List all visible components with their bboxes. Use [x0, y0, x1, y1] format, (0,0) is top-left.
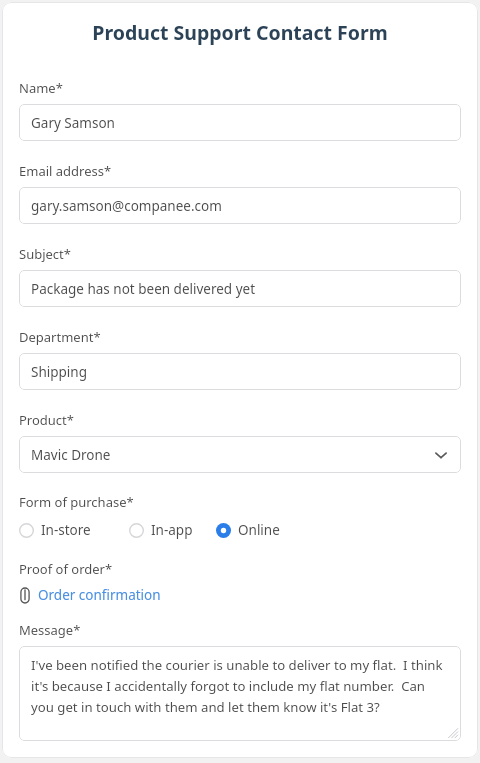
staticText: Online	[238, 521, 280, 539]
staticText: Form of purchase*	[19, 493, 134, 511]
staticText: In-store	[41, 521, 91, 539]
staticText: Gary Samson	[31, 114, 115, 132]
button[interactable]: I've been notified the courier is unable…	[19, 646, 461, 741]
staticText: Subject*	[19, 245, 71, 263]
staticText: Package has not been delivered yet	[31, 280, 256, 298]
staticText: Product Support Contact Form	[2, 19, 478, 46]
staticText: Order confirmation	[38, 586, 161, 604]
button[interactable]: Mavic Drone	[19, 436, 461, 473]
button[interactable]: In-app	[129, 519, 193, 541]
button[interactable]: gary.samson@companee.com	[19, 187, 461, 224]
staticText: Message*	[19, 621, 81, 639]
staticText: Shipping	[31, 363, 87, 381]
staticText: Department*	[19, 328, 101, 346]
staticText: Product*	[19, 411, 74, 429]
button[interactable]: Attachment	[19, 586, 161, 604]
button[interactable]: Online	[216, 519, 280, 541]
staticText: Proof of order*	[19, 560, 113, 578]
button[interactable]: Shipping	[19, 353, 461, 390]
staticText: gary.samson@companee.com	[31, 197, 222, 215]
other: Attachment	[19, 587, 31, 604]
staticText: In-app	[151, 521, 193, 539]
button[interactable]: Package has not been delivered yet	[19, 270, 461, 307]
staticText: Mavic Drone	[31, 446, 111, 464]
staticText: I've been notified the courier is unable…	[31, 656, 451, 716]
button[interactable]: Gary Samson	[19, 104, 461, 141]
button[interactable]: In-store	[19, 519, 91, 541]
staticText: Name*	[19, 79, 63, 97]
staticText: Email address*	[19, 162, 112, 180]
